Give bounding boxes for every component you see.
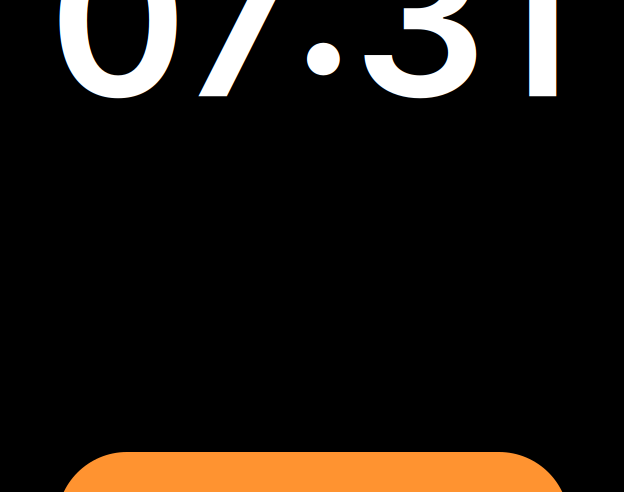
button[interactable]: Pause: [57, 452, 569, 492]
staticText: 07:31: [49, 0, 572, 147]
